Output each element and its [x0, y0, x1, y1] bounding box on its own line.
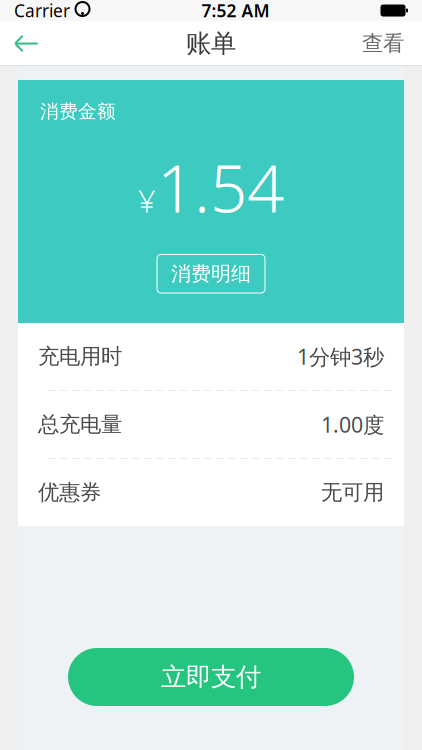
staticText: 1.54 [157, 144, 284, 230]
staticText: Carrier [14, 0, 70, 22]
button[interactable]: 查看 [348, 21, 418, 66]
staticText: 消费明细 [171, 261, 251, 286]
staticText: 7:52 AM [201, 0, 269, 22]
staticText: ¥ [138, 180, 156, 221]
staticText: 账单 [186, 28, 236, 59]
staticText: 无可用 [321, 479, 384, 506]
staticText: 立即支付 [161, 661, 261, 692]
staticText: 1.00度 [321, 410, 384, 439]
staticText: 1分钟3秒 [297, 342, 384, 371]
staticText: 充电用时 [38, 343, 122, 370]
button[interactable]: 消费明细 [157, 254, 265, 293]
staticText: 优惠券 [38, 479, 101, 506]
button[interactable]: 立即支付 [68, 648, 354, 706]
staticText: 消费金额 [40, 100, 116, 123]
staticText: 总充电量 [38, 411, 122, 438]
button[interactable]: Back [4, 21, 50, 66]
staticText: 查看 [362, 30, 404, 57]
